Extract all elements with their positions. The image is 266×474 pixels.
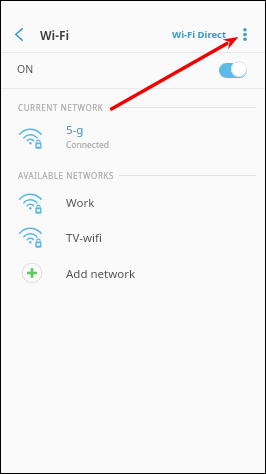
button[interactable]: TV-wifi xyxy=(1,220,265,252)
staticText: Add network xyxy=(66,266,136,282)
button[interactable]: ON xyxy=(1,51,265,87)
button[interactable]: More options xyxy=(234,18,256,51)
button[interactable]: Work xyxy=(1,186,265,218)
staticText: 5-g xyxy=(66,122,84,138)
staticText: Wi-Fi Direct xyxy=(172,28,227,41)
staticText: TV-wifi xyxy=(66,230,102,246)
button[interactable]: Wi-Fi toggle xyxy=(219,61,247,77)
button[interactable]: 5-g xyxy=(1,121,265,153)
button[interactable]: Wi-Fi Direct xyxy=(168,19,234,50)
staticText: Wi-Fi xyxy=(40,27,70,43)
button[interactable]: Add network xyxy=(1,255,265,287)
button[interactable]: Back xyxy=(1,18,36,51)
staticText: CURRENT NETWORK xyxy=(18,102,104,113)
staticText: Connected xyxy=(66,139,109,151)
staticText: ON xyxy=(17,62,34,76)
staticText: Work xyxy=(66,195,95,211)
staticText: AVAILABLE NETWORKS xyxy=(18,170,115,181)
